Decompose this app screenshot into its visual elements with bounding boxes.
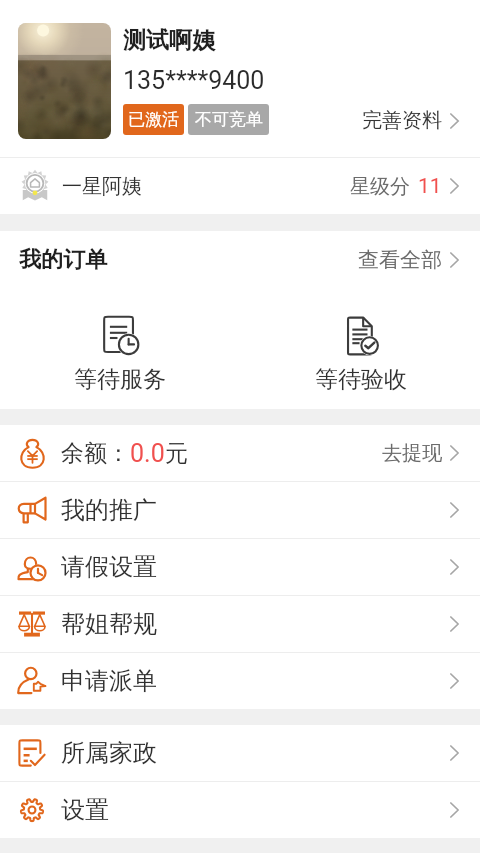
- button[interactable]: 帮姐帮规: [0, 596, 480, 652]
- staticText: 去提现: [382, 441, 442, 466]
- staticText: 11: [418, 174, 442, 199]
- staticText: 请假设置: [61, 552, 450, 582]
- staticText: 查看全部: [358, 247, 442, 273]
- staticText: 我的推广: [61, 495, 450, 525]
- staticText: 等待服务: [74, 365, 166, 394]
- staticText: 余额：: [61, 439, 130, 468]
- button[interactable]: 设置: [0, 782, 480, 838]
- staticText: 135****9400: [123, 66, 265, 95]
- staticText: 帮姐帮规: [61, 609, 450, 639]
- staticText: 一星阿姨: [62, 174, 350, 199]
- button[interactable]: 我的订单: [0, 231, 480, 289]
- staticText: 设置: [61, 795, 450, 825]
- button[interactable]: 完善资料: [362, 108, 459, 133]
- staticText: 申请派单: [61, 666, 450, 696]
- button[interactable]: 申请派单: [0, 653, 480, 709]
- button[interactable]: 一星阿姨: [0, 158, 480, 214]
- staticText: 不可竞单: [195, 109, 263, 130]
- button[interactable]: 等待验收: [286, 289, 436, 394]
- staticText: 星级分: [350, 174, 410, 199]
- staticText: 0.0: [130, 439, 165, 468]
- staticText: 测试啊姨: [123, 26, 215, 55]
- staticText: 已激活: [128, 109, 179, 130]
- staticText: 等待验收: [315, 365, 407, 394]
- button[interactable]: 余额：: [0, 425, 480, 481]
- staticText: 所属家政: [61, 738, 450, 768]
- staticText: 完善资料: [362, 108, 442, 133]
- button[interactable]: 测试啊姨: [0, 0, 480, 157]
- button[interactable]: 我的推广: [0, 482, 480, 538]
- staticText: 我的订单: [19, 246, 358, 274]
- button[interactable]: 所属家政: [0, 725, 480, 781]
- staticText: 元: [165, 439, 382, 468]
- button[interactable]: 请假设置: [0, 539, 480, 595]
- button[interactable]: 等待服务: [45, 289, 195, 394]
